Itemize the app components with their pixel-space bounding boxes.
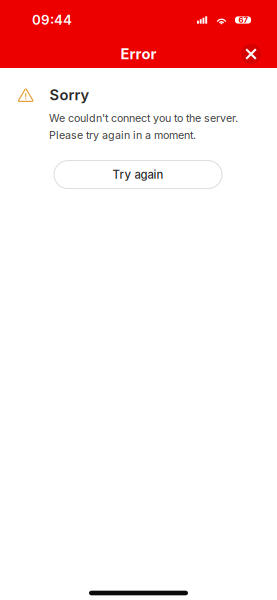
staticText: Please try again in a moment. (49, 129, 196, 142)
staticText: 09:44 (32, 12, 72, 28)
staticText: We couldn't connect you to the server. (49, 112, 238, 125)
staticText: Sorry (49, 86, 89, 104)
staticText: 67 (238, 15, 247, 25)
staticText: Error (120, 45, 156, 63)
staticText: Try again (112, 168, 163, 181)
button[interactable]: Try again (54, 161, 222, 189)
button[interactable]: Close (237, 40, 265, 68)
